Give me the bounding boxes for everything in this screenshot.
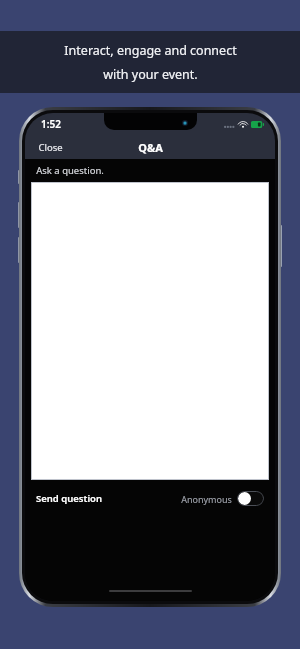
staticText: Close xyxy=(38,141,63,154)
button[interactable]: Close xyxy=(25,137,73,158)
staticText: Q&A xyxy=(138,140,163,155)
button[interactable]: Send question xyxy=(36,489,102,508)
button[interactable]: Anonymous toggle xyxy=(181,489,264,508)
staticText: 1:52 xyxy=(41,117,61,131)
staticText: Send question xyxy=(36,492,102,505)
staticText: with your event. xyxy=(103,66,198,83)
button[interactable] xyxy=(31,182,269,480)
staticText: Ask a question. xyxy=(36,164,104,177)
staticText: Anonymous xyxy=(181,493,232,505)
staticText: Interact, engage and connect xyxy=(64,42,237,59)
